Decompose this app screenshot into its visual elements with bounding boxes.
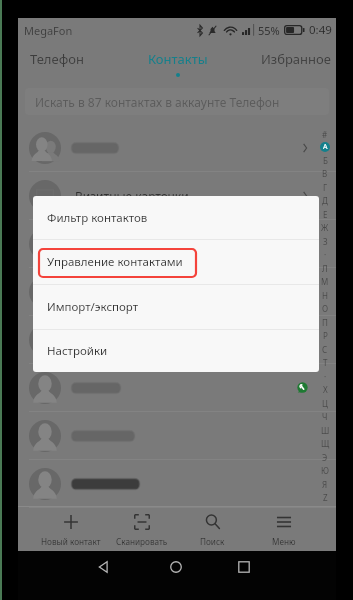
button[interactable] [18,460,336,507]
staticText: З [323,236,328,247]
button[interactable] [18,412,336,459]
button[interactable] [18,268,336,315]
staticText: О [322,303,329,314]
button[interactable]: Фильтр контактов [33,196,319,239]
staticText: Б [323,155,328,166]
staticText: · [324,249,327,260]
button[interactable]: Управление контактами [33,240,319,284]
button[interactable]: Контакты [122,42,233,88]
button[interactable]: Сканировать [106,507,177,551]
staticText: Фильтр контактов [47,210,148,226]
staticText: Т [323,357,328,368]
staticText: Поиск [200,536,225,547]
button[interactable]: Новый контакт [35,507,106,551]
staticText: Р [323,330,328,341]
staticText: С [322,344,328,355]
staticText: 55% [258,23,280,38]
staticText: Ю [321,465,329,476]
staticText: Ш [321,425,330,436]
button[interactable]: Визитные карточки [18,172,336,219]
staticText: Меню [272,536,296,547]
staticText: Д [322,195,328,206]
staticText: MegaFon [24,23,73,38]
button[interactable] [18,316,336,363]
staticText: Щ [321,438,330,449]
staticText: # [322,129,328,140]
staticText: П [322,317,328,328]
staticText: Телефон [30,50,84,68]
button[interactable] [18,364,336,411]
staticText: Управление контактами [47,254,183,270]
staticText: В [322,168,328,179]
staticText: Г [323,182,328,193]
staticText: 0:49 [309,22,332,38]
staticText: Z [323,492,328,503]
staticText: Е [323,209,328,220]
staticText: Импорт/экспорт [47,299,139,315]
staticText: М [321,276,329,287]
button[interactable] [18,220,336,267]
button[interactable]: Искать в 87 контактах в аккаунте Телефон [25,88,329,115]
staticText: Ц [322,398,328,409]
staticText: Искать в 87 контактах в аккаунте Телефон [35,94,280,110]
staticText: Ж [321,222,329,233]
staticText: Х [323,384,328,395]
staticText: Контакты [148,50,208,68]
button[interactable]: Меню [248,507,319,551]
staticText: Настройки [47,343,108,359]
staticText: Я [322,479,328,490]
staticText: Э [322,452,328,463]
staticText: Избранное [261,50,331,68]
button[interactable] [18,124,336,171]
staticText: Визитные карточки [75,188,189,204]
button[interactable]: Телефон [18,42,96,88]
staticText: Н [322,290,328,301]
staticText: Новый контакт [41,536,101,547]
button[interactable]: Поиск [177,507,248,551]
button[interactable]: Импорт/экспорт [33,285,319,329]
staticText: A [323,142,328,152]
staticText: Ч [322,411,328,422]
button[interactable]: Настройки [33,330,319,372]
button[interactable]: Alphabet index [316,126,334,506]
staticText: · [324,371,327,382]
staticText: Сканировать [116,536,168,547]
button[interactable]: Избранное [256,42,335,88]
staticText: Л [322,263,328,274]
